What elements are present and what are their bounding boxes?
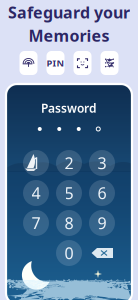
- button[interactable]: 2: [56, 150, 82, 176]
- staticText: PIN: [46, 57, 64, 69]
- staticText: 2: [64, 152, 73, 174]
- button[interactable]: 9: [89, 210, 115, 236]
- button[interactable]: 7: [23, 210, 49, 236]
- staticText: 0: [64, 242, 73, 264]
- button[interactable]: 1: [23, 150, 49, 176]
- button[interactable]: Delete: [89, 240, 115, 266]
- staticText: 5: [64, 182, 73, 204]
- staticText: Memories: [28, 25, 109, 46]
- staticText: 9: [97, 212, 106, 234]
- staticText: 1: [31, 152, 40, 174]
- button[interactable]: 8: [56, 210, 82, 236]
- button[interactable]: Fingerprint: [19, 51, 37, 75]
- staticText: 4: [31, 182, 40, 204]
- staticText: 7: [31, 212, 40, 234]
- button[interactable]: Pattern: [100, 51, 118, 75]
- staticText: Safeguard your: [8, 2, 130, 23]
- staticText: 3: [97, 152, 106, 174]
- button[interactable]: PIN: [46, 51, 64, 75]
- staticText: Password: [41, 100, 97, 116]
- button[interactable]: 6: [89, 180, 115, 206]
- staticText: 8: [64, 212, 73, 234]
- button[interactable]: 3: [89, 150, 115, 176]
- button[interactable]: 5: [56, 180, 82, 206]
- button[interactable]: Face ID: [73, 51, 91, 75]
- button[interactable]: 4: [23, 180, 49, 206]
- button[interactable]: 0: [56, 240, 82, 266]
- staticText: 6: [97, 182, 106, 204]
